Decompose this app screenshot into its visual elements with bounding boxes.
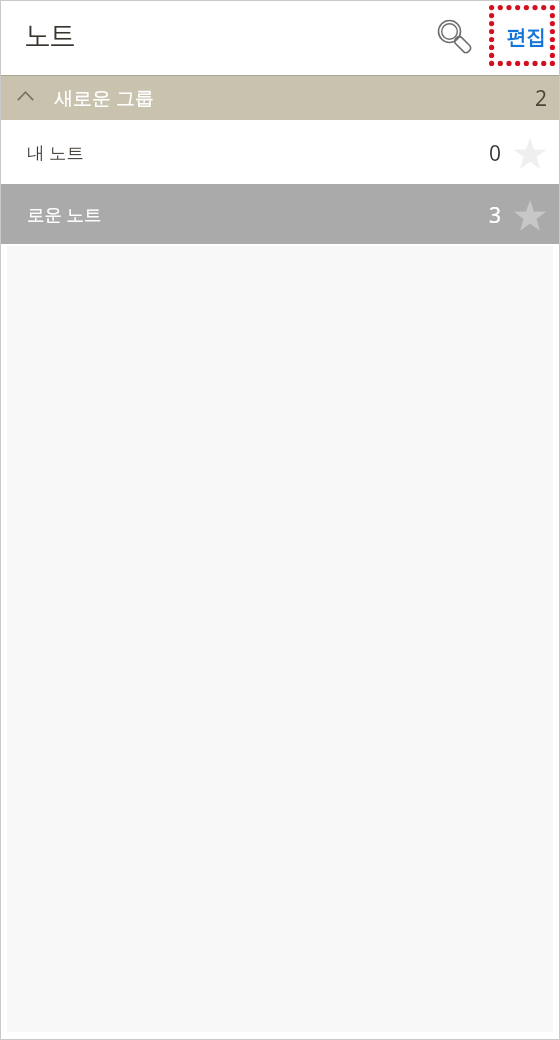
button[interactable]: 새로운 그룹	[0, 75, 560, 120]
staticText: 새로운 그룹	[54, 85, 154, 111]
staticText: 2	[535, 84, 548, 113]
staticText: 편집	[506, 25, 546, 50]
button[interactable]: 내 노트	[0, 120, 560, 184]
button[interactable]: Search	[429, 11, 479, 61]
staticText: 0	[489, 139, 502, 168]
staticText: 내 노트	[27, 140, 85, 164]
staticText: 3	[489, 201, 502, 230]
button[interactable]: 편집	[489, 5, 555, 66]
button[interactable]: Favourite	[508, 192, 552, 236]
button[interactable]: 로운 노트	[0, 184, 560, 244]
button[interactable]: Favourite	[508, 130, 552, 174]
staticText: 노트	[25, 16, 75, 58]
staticText: 로운 노트	[27, 202, 102, 226]
